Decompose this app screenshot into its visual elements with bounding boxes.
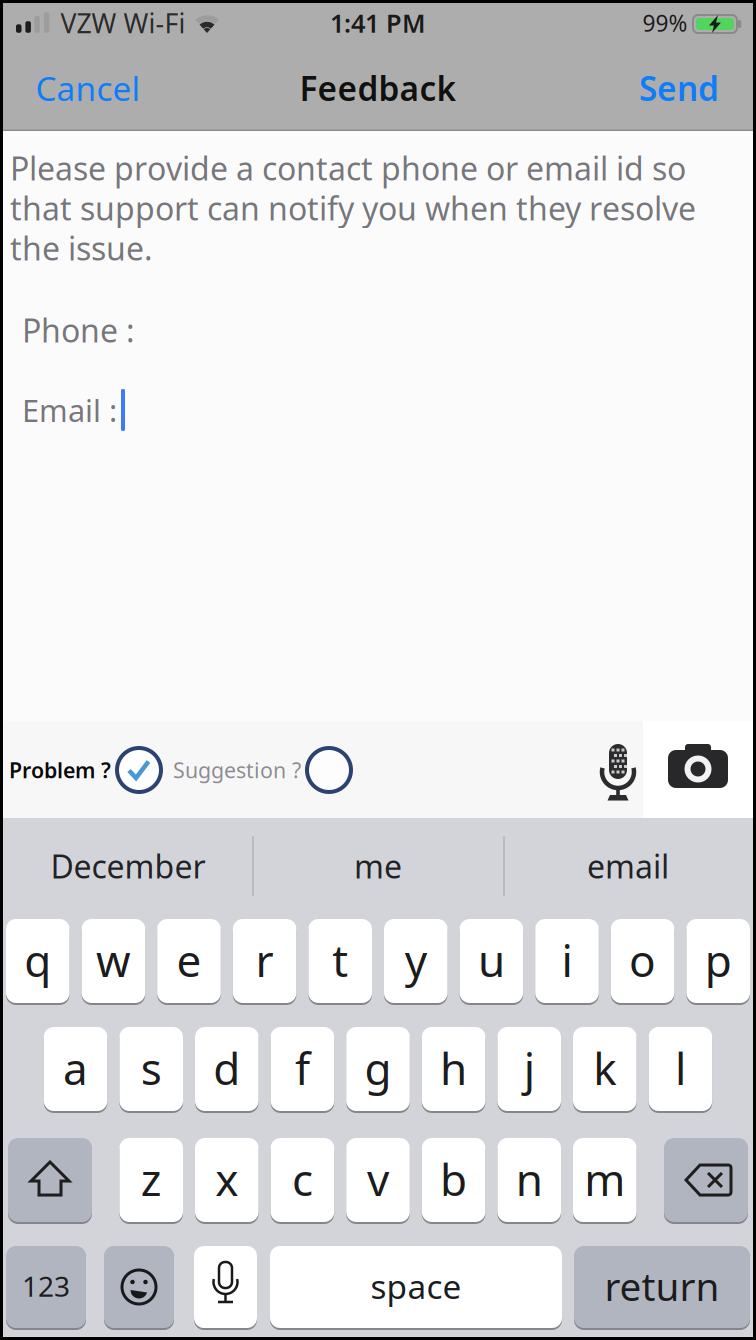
button[interactable]: Send [639, 66, 719, 110]
staticText: e [176, 931, 201, 989]
button[interactable]: d [195, 1027, 259, 1111]
button[interactable]: u [460, 919, 523, 1003]
button[interactable]: email [508, 824, 748, 908]
staticText: i [561, 931, 572, 989]
staticText: me [354, 845, 402, 887]
staticText: email [587, 845, 669, 887]
button[interactable]: Emoji [104, 1246, 174, 1328]
staticText: u [478, 931, 505, 989]
staticText: Send [639, 66, 719, 110]
staticText: Feedback [299, 66, 456, 110]
staticText: a [63, 1039, 88, 1097]
staticText: o [629, 931, 656, 989]
staticText: return [604, 1260, 719, 1312]
button[interactable]: a [44, 1027, 107, 1111]
staticText: Email : [22, 390, 117, 430]
button[interactable]: Delete [664, 1138, 748, 1222]
button[interactable]: me [258, 824, 498, 908]
button[interactable]: o [611, 919, 674, 1003]
staticText: Cancel [35, 66, 140, 110]
staticText: m [584, 1150, 625, 1208]
button[interactable]: j [497, 1027, 561, 1111]
button[interactable]: f [271, 1027, 334, 1111]
button[interactable]: Cancel [35, 66, 140, 110]
button[interactable]: December [8, 824, 248, 908]
staticText: Problem ? [9, 756, 111, 784]
staticText: q [24, 931, 51, 989]
staticText: j [524, 1039, 535, 1097]
button[interactable]: c [271, 1138, 334, 1222]
staticText: k [593, 1039, 616, 1097]
staticText: n [516, 1150, 543, 1208]
button[interactable]: p [686, 919, 750, 1003]
staticText: the issue. [10, 227, 153, 269]
button[interactable]: z [119, 1138, 183, 1222]
button[interactable]: Camera [666, 744, 730, 796]
button[interactable]: n [497, 1138, 561, 1222]
staticText: z [141, 1150, 162, 1208]
button[interactable]: Shift [8, 1138, 92, 1222]
staticText: y [405, 931, 427, 989]
button[interactable]: m [573, 1138, 637, 1222]
staticText: VZW Wi-Fi [60, 5, 185, 41]
button[interactable]: Suggestion ? [173, 748, 351, 792]
button[interactable]: Problem ? [9, 748, 161, 792]
staticText: f [295, 1039, 310, 1097]
button[interactable]: return [574, 1246, 750, 1328]
staticText: Phone : [22, 309, 135, 351]
staticText: d [213, 1039, 240, 1097]
staticText: Please provide a contact phone or email … [10, 147, 686, 189]
staticText: t [332, 931, 348, 989]
staticText: p [705, 931, 732, 989]
button[interactable]: k [573, 1027, 637, 1111]
staticText: 99% [642, 8, 687, 38]
button[interactable]: l [649, 1027, 712, 1111]
button[interactable]: r [233, 919, 296, 1003]
staticText: h [440, 1039, 467, 1097]
button[interactable]: 123 [6, 1246, 86, 1328]
button[interactable]: b [422, 1138, 485, 1222]
staticText: that support can notify you when they re… [10, 187, 696, 229]
button[interactable]: g [346, 1027, 410, 1111]
staticText: b [440, 1150, 467, 1208]
button[interactable]: space [270, 1246, 562, 1328]
button[interactable]: t [308, 919, 372, 1003]
button[interactable]: x [195, 1138, 259, 1222]
button[interactable]: y [384, 919, 448, 1003]
button[interactable]: s [119, 1027, 183, 1111]
button[interactable]: e [157, 919, 221, 1003]
staticText: l [675, 1039, 686, 1097]
button[interactable]: i [535, 919, 599, 1003]
button[interactable]: h [422, 1027, 485, 1111]
staticText: space [370, 1264, 461, 1308]
staticText: December [50, 845, 205, 887]
button[interactable]: w [82, 919, 145, 1003]
button[interactable]: Dictate [194, 1246, 257, 1328]
button[interactable]: Dictate [596, 739, 640, 801]
button[interactable]: q [6, 919, 70, 1003]
staticText: Suggestion ? [173, 756, 301, 784]
staticText: w [96, 931, 131, 989]
staticText: c [292, 1150, 313, 1208]
staticText: r [256, 931, 274, 989]
staticText: v [367, 1150, 389, 1208]
staticText: 1:41 PM [330, 6, 426, 40]
staticText: x [215, 1150, 238, 1208]
staticText: 123 [22, 1267, 70, 1305]
button[interactable]: v [346, 1138, 410, 1222]
staticText: s [141, 1039, 162, 1097]
staticText: g [364, 1039, 391, 1097]
